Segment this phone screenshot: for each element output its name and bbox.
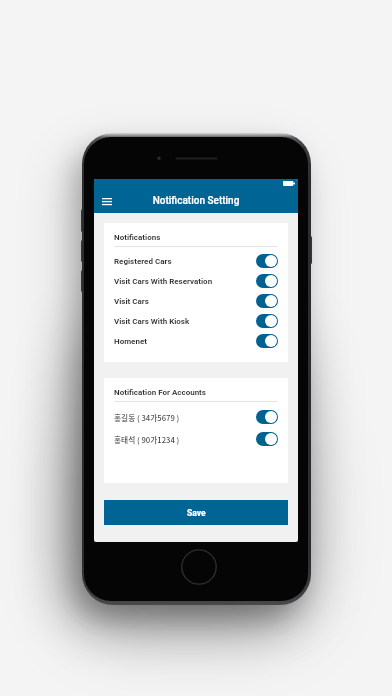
button[interactable]: Visit Cars — [114, 291, 278, 311]
staticText: Notification For Accounts — [114, 388, 206, 397]
staticText: 홍길동 ( 34가5679 ) — [114, 412, 256, 423]
staticText: Visit Cars With Reservation — [114, 277, 256, 286]
button[interactable]: Notification toggle, on — [256, 314, 278, 328]
button[interactable]: Notification toggle, on — [256, 410, 278, 424]
button[interactable]: Visit Cars With Kiosk — [114, 311, 278, 331]
staticText: Registered Cars — [114, 257, 256, 266]
staticText: Visit Cars — [114, 297, 256, 306]
staticText: Visit Cars With Kiosk — [114, 317, 256, 326]
button[interactable]: Save — [104, 500, 288, 525]
button[interactable]: Notification toggle, on — [256, 294, 278, 308]
button[interactable]: Visit Cars With Reservation — [114, 271, 278, 291]
button[interactable]: Notification toggle, on — [256, 334, 278, 348]
button[interactable]: 홍태석 ( 90가1234 ) — [114, 428, 278, 450]
staticText: Notifications — [114, 233, 161, 242]
staticText: Notification Setting — [94, 195, 298, 207]
button[interactable]: Notification toggle, on — [256, 432, 278, 446]
button[interactable]: Open navigation menu — [96, 192, 118, 210]
button[interactable]: Notification toggle, on — [256, 274, 278, 288]
staticText: 홍태석 ( 90가1234 ) — [114, 434, 256, 445]
staticText: Save — [187, 508, 206, 518]
button[interactable]: Notification toggle, on — [256, 254, 278, 268]
button[interactable]: 홍길동 ( 34가5679 ) — [114, 406, 278, 428]
staticText: Homenet — [114, 337, 256, 346]
button[interactable]: Registered Cars — [114, 251, 278, 271]
button[interactable]: Homenet — [114, 331, 278, 351]
